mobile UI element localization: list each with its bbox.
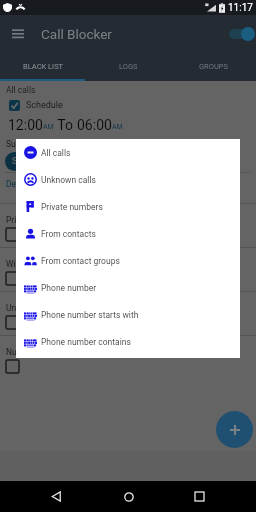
staticText: From contacts	[41, 229, 96, 239]
staticText: Sunday	[6, 139, 34, 149]
button[interactable]: S	[5, 152, 24, 171]
staticText: 11:17	[228, 2, 253, 14]
staticText: AM	[112, 123, 123, 131]
staticText: 12:00	[8, 117, 43, 133]
button[interactable]: GROUPS	[171, 53, 256, 79]
staticText: GROUPS	[199, 62, 228, 71]
button[interactable]: Phone number starts with	[16, 301, 240, 328]
staticText: LOGS	[119, 62, 138, 71]
button[interactable]: Phone number	[16, 274, 240, 301]
staticText: Unknown calls	[41, 175, 96, 185]
button[interactable]: Private numbers	[16, 193, 240, 220]
button[interactable]: Open navigation menu	[0, 15, 36, 53]
staticText: BLACK LIST	[23, 62, 64, 71]
staticText: Schedule	[26, 100, 63, 111]
button[interactable]: Number not in contacts	[0, 335, 256, 379]
staticText: Phone number starts with	[41, 310, 139, 320]
staticText: Phone number	[41, 283, 97, 293]
button[interactable]: Enable call blocking	[228, 22, 256, 46]
button[interactable]: Unknown numbers	[0, 291, 256, 335]
button[interactable]: LOGS	[86, 53, 171, 79]
button[interactable]: BLACK LIST	[0, 53, 86, 79]
button[interactable]: Phone number contains	[16, 328, 240, 355]
staticText: Phone number contains	[41, 337, 131, 347]
staticText: All calls	[41, 148, 71, 158]
button[interactable]: Add to black list	[216, 411, 253, 448]
staticText: All calls	[6, 85, 36, 95]
staticText: M	[33, 156, 41, 167]
staticText: Unknown numbers	[6, 303, 77, 313]
staticText: Number not in contacts	[6, 347, 95, 357]
staticText: 06:00	[77, 117, 112, 133]
staticText: AM	[43, 123, 54, 131]
staticText: From contact groups	[41, 256, 120, 266]
button[interactable]: T	[49, 152, 68, 171]
button[interactable]: M	[27, 152, 46, 171]
button[interactable]: Recent apps	[184, 481, 215, 512]
button[interactable]: All calls	[16, 139, 240, 166]
button[interactable]: From contact groups	[16, 247, 240, 274]
staticText: Private numbers	[6, 215, 68, 225]
staticText: S	[12, 156, 18, 167]
staticText: Withheld numbers	[6, 259, 75, 269]
button[interactable]: Withheld numbers	[0, 247, 256, 291]
button[interactable]: Back	[41, 481, 72, 512]
button[interactable]: From contacts	[16, 220, 240, 247]
button[interactable]: Private numbers	[0, 203, 256, 247]
staticText: Private numbers	[41, 202, 103, 212]
button[interactable]: Delete after 30 days	[6, 179, 82, 189]
staticText: Call Blocker	[41, 26, 112, 42]
button[interactable]: Home	[113, 481, 144, 512]
staticText: To	[54, 117, 77, 133]
button[interactable]: Unknown calls	[16, 166, 240, 193]
